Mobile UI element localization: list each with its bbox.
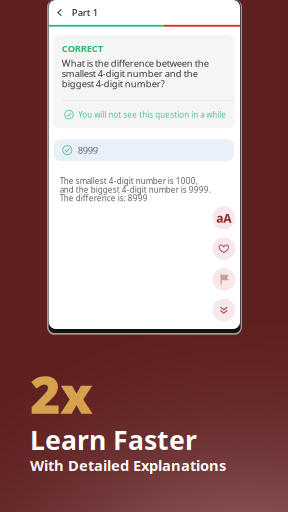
staticText: With Detailed Explanations bbox=[30, 455, 226, 475]
button[interactable]: Report bbox=[212, 268, 235, 291]
staticText: What is the difference between the small… bbox=[62, 57, 209, 90]
staticText: 8999 bbox=[78, 144, 98, 156]
button[interactable]: Next question bbox=[212, 299, 235, 322]
staticText: You will not see this question in a whil… bbox=[78, 109, 226, 120]
button[interactable]: Favourite bbox=[212, 237, 235, 260]
staticText: Learn Faster bbox=[30, 422, 197, 457]
staticText: The smallest 4-digit number is 1000, and… bbox=[60, 176, 211, 203]
staticText: Part 1 bbox=[72, 6, 98, 19]
staticText: aA bbox=[216, 210, 231, 226]
staticText: CORRECT bbox=[62, 42, 103, 54]
button[interactable]: Back bbox=[54, 4, 66, 20]
staticText: 2x bbox=[30, 359, 93, 428]
button[interactable]: Text size bbox=[212, 206, 235, 229]
